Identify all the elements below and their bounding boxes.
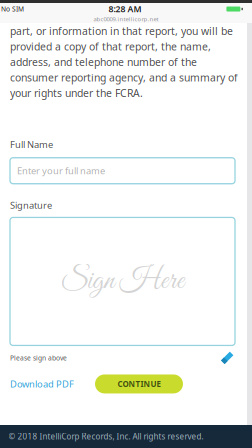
staticText: Please sign above (10, 353, 67, 362)
staticText: Download PDF (10, 378, 74, 390)
staticText: part, or information in that report, you… (10, 24, 238, 100)
staticText: © 2018 IntelliCorp Records, Inc. All rig… (8, 431, 203, 442)
staticText: Full Name (10, 138, 53, 151)
staticText: Sign Here (60, 263, 184, 300)
staticText: 8:28 AM (108, 3, 141, 15)
button[interactable]: Clear signature (218, 350, 235, 365)
staticText: CONTINUE (117, 378, 160, 389)
staticText: Enter your full name (17, 164, 105, 177)
staticText: No SIM (1, 4, 24, 14)
button[interactable]: Download PDF (10, 378, 74, 390)
staticText: Signature (10, 199, 52, 211)
staticText: abc0009.intellicorp.net (93, 15, 158, 23)
button[interactable]: CONTINUE (95, 374, 183, 393)
